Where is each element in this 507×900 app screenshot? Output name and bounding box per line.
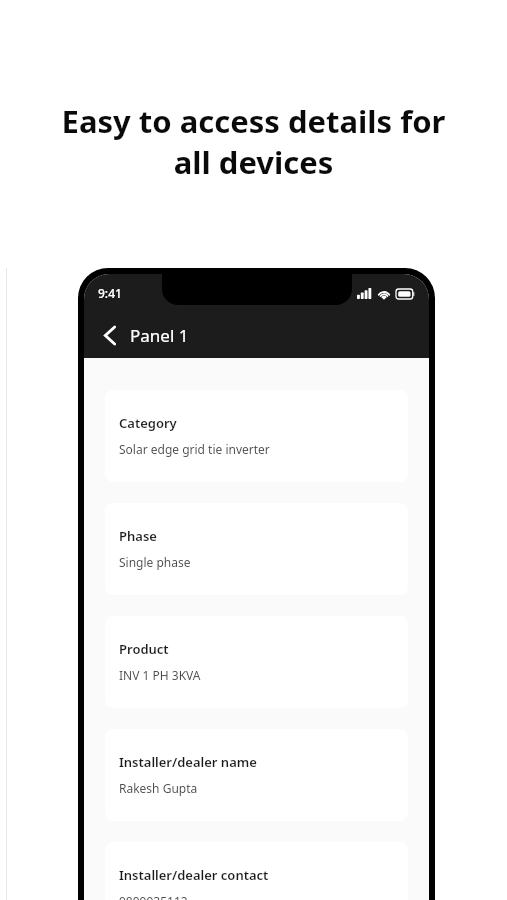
staticText: Single phase — [119, 554, 191, 570]
staticText: Installer/dealer name — [119, 753, 257, 771]
staticText: 9:41 — [98, 285, 122, 301]
button[interactable]: Product — [105, 616, 408, 708]
staticText: Rakesh Gupta — [119, 780, 198, 796]
staticText: Phase — [119, 527, 157, 545]
staticText: Panel 1 — [130, 324, 189, 347]
button[interactable]: Back — [94, 319, 126, 351]
staticText: Easy to access details for all devices — [40, 100, 467, 183]
staticText: 9899935112 — [119, 893, 188, 900]
staticText: Installer/dealer contact — [119, 866, 269, 884]
staticText: INV 1 PH 3KVA — [119, 667, 201, 683]
staticText: Product — [119, 640, 169, 658]
button[interactable]: Phase — [105, 503, 408, 595]
button[interactable]: Installer/dealer contact — [105, 842, 408, 900]
button[interactable]: Category — [105, 390, 408, 482]
staticText: Solar edge grid tie inverter — [119, 441, 270, 457]
staticText: Category — [119, 414, 177, 432]
button[interactable]: Installer/dealer name — [105, 729, 408, 821]
